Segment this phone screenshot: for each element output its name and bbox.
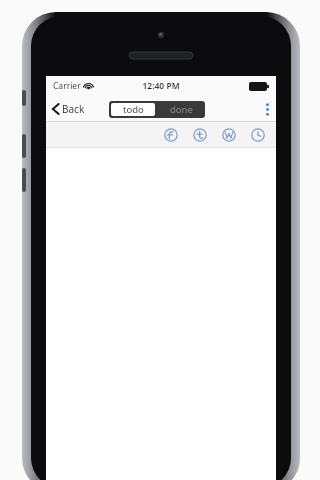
button[interactable]: todo bbox=[111, 103, 155, 116]
staticText: Carrier bbox=[53, 80, 81, 92]
staticText: done bbox=[170, 103, 193, 116]
button[interactable]: Tumblr bbox=[192, 127, 208, 143]
button[interactable]: Wikipedia bbox=[221, 127, 237, 143]
button[interactable]: More options bbox=[258, 96, 276, 122]
button[interactable]: Back bbox=[46, 96, 93, 122]
staticText: todo bbox=[123, 103, 144, 116]
button[interactable]: Recent bbox=[250, 127, 266, 143]
button[interactable]: Facebook bbox=[163, 127, 179, 143]
staticText: Back bbox=[62, 102, 85, 116]
staticText: 12:40 PM bbox=[142, 80, 180, 92]
button[interactable]: done bbox=[157, 101, 205, 118]
